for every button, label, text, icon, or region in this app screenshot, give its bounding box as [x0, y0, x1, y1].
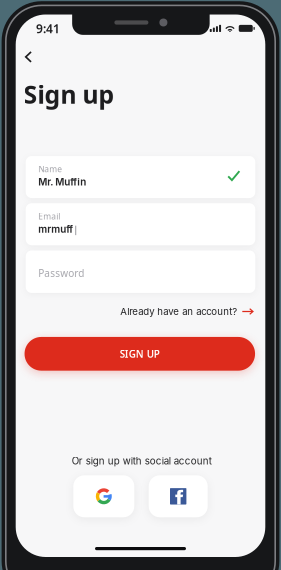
staticText: Sign up	[23, 77, 114, 111]
staticText: Email	[38, 211, 60, 222]
staticText: 9:41	[36, 20, 60, 37]
staticText: SIGN UP	[120, 347, 160, 360]
staticText: Name	[38, 163, 62, 175]
button[interactable]: SIGN UP	[24, 337, 255, 371]
staticText: Password	[38, 266, 84, 280]
staticText: Or sign up with social account	[72, 455, 212, 467]
staticText: Already have an account?	[120, 306, 237, 317]
button[interactable]: Back	[16, 45, 40, 69]
staticText: mrmuff	[38, 223, 73, 235]
button[interactable]: Already have an account?	[120, 304, 254, 318]
button[interactable]: Sign up with Facebook	[149, 475, 208, 517]
staticText: Mr. Muffin	[38, 176, 86, 188]
button[interactable]: Sign up with Google	[73, 475, 134, 517]
